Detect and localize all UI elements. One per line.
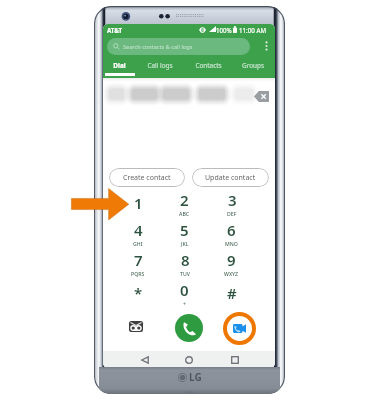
staticText: 1 <box>134 193 143 213</box>
button[interactable]: # <box>208 278 255 308</box>
staticText: Contacts <box>195 61 222 70</box>
staticText: Create contact <box>123 173 171 183</box>
button[interactable]: 7 <box>115 248 161 278</box>
button[interactable]: Create contact <box>109 168 185 187</box>
button[interactable]: Dial <box>109 56 130 78</box>
button[interactable]: 4 <box>115 218 161 248</box>
staticText: LG <box>189 370 202 384</box>
staticText: 2 <box>180 190 189 210</box>
button[interactable]: Call <box>175 314 203 342</box>
staticText: 11:00 AM <box>239 26 266 34</box>
staticText: GHI <box>133 240 143 247</box>
button[interactable]: Call logs <box>140 56 180 78</box>
staticText: 8 <box>181 250 190 270</box>
staticText: Search contacts & call logs <box>123 43 193 51</box>
staticText: + <box>183 300 186 307</box>
staticText: 4 <box>134 220 143 240</box>
button[interactable]: More options <box>261 39 271 52</box>
staticText: 5 <box>180 220 189 240</box>
button[interactable]: 3 <box>208 188 255 218</box>
button[interactable]: 2 <box>161 188 208 218</box>
staticText: Groups <box>242 61 264 70</box>
staticText: DEF <box>227 210 237 217</box>
staticText: 0 <box>180 280 189 300</box>
button[interactable]: Search contacts & call logs <box>107 38 250 55</box>
button[interactable]: 9 <box>208 248 255 278</box>
staticText: * <box>134 283 143 303</box>
staticText: TUV <box>180 270 190 277</box>
staticText: 7 <box>134 250 143 270</box>
button[interactable]: 6 <box>208 218 255 248</box>
button[interactable]: Home <box>183 354 195 366</box>
staticText: WXYZ <box>224 270 239 277</box>
staticText: # <box>227 283 237 303</box>
button[interactable]: * <box>115 278 161 308</box>
button[interactable]: Groups <box>233 56 273 78</box>
button[interactable]: Backspace <box>254 91 269 102</box>
button[interactable]: 5 <box>161 218 208 248</box>
staticText: MNO <box>225 240 238 247</box>
staticText: ABC <box>179 210 190 217</box>
staticText: Call logs <box>147 61 173 70</box>
staticText: 100% <box>216 26 232 34</box>
staticText: 9 <box>227 250 236 270</box>
button[interactable]: Update contact <box>192 168 269 187</box>
button[interactable]: Contacts <box>186 56 230 78</box>
staticText: Dial <box>113 61 126 70</box>
button[interactable]: Recents <box>229 354 241 366</box>
button[interactable]: Video call <box>223 312 256 345</box>
staticText: JKL <box>181 240 189 247</box>
staticText: AT&T <box>107 26 123 34</box>
staticText: PQRS <box>131 270 145 277</box>
button[interactable]: 0 <box>161 278 208 308</box>
button[interactable]: Back <box>139 354 151 366</box>
staticText: 6 <box>227 220 236 240</box>
button[interactable]: 1 <box>115 188 161 218</box>
staticText: Update contact <box>205 173 256 183</box>
button[interactable]: 8 <box>161 248 208 278</box>
staticText: 3 <box>228 190 237 210</box>
button[interactable]: Voicemail <box>129 321 143 332</box>
